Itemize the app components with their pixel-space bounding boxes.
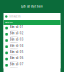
staticText: 06/05/2024 — [10, 66, 18, 68]
staticText: Bàn số 02 — [10, 31, 24, 35]
button[interactable]: Bàn số 06 — [3, 56, 60, 62]
staticText: Bàn số 07 — [10, 62, 24, 66]
staticText: 12/05/2024 — [10, 29, 18, 31]
staticText: Lịch sử đặt bàn — [21, 5, 43, 8]
staticText: 07/05/2024 — [10, 60, 18, 62]
staticText: 09/05/2024 — [10, 48, 18, 49]
button[interactable]: Bàn số 07 — [3, 62, 60, 68]
staticText: Bàn số 04 — [10, 44, 24, 47]
staticText: Bàn số 05 — [10, 50, 24, 54]
staticText: Tìm kiếm — [9, 15, 20, 18]
staticText: Bàn số 06 — [10, 56, 24, 60]
staticText: 10/05/2024 — [10, 41, 18, 43]
button[interactable]: Bàn số 01 — [3, 25, 60, 31]
staticText: Mã đặt bàn — [5, 22, 13, 23]
staticText: 08/05/2024 — [10, 54, 18, 56]
button[interactable]: Bàn số 04 — [3, 44, 60, 50]
button[interactable]: Bàn số 02 — [3, 31, 60, 37]
button[interactable]: Bàn số 05 — [3, 50, 60, 56]
staticText: 11/05/2024 — [10, 35, 18, 37]
staticText: Bàn số 03 — [10, 38, 24, 41]
button[interactable]: Bàn số 03 — [3, 37, 60, 44]
staticText: Bàn số 01 — [10, 25, 24, 29]
